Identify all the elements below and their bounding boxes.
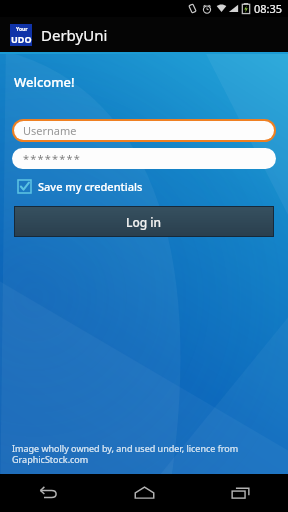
button[interactable]: Log in	[15, 207, 273, 236]
button[interactable]: Save my credentials	[16, 177, 145, 196]
button[interactable]: Back	[0, 474, 96, 512]
staticText: Save my credentials	[38, 179, 143, 194]
staticText: Username	[23, 123, 77, 138]
button[interactable]: Home	[96, 474, 192, 512]
staticText: Welcome!	[14, 73, 75, 91]
staticText: 08:35	[254, 1, 283, 16]
staticText: ********	[23, 151, 82, 166]
button[interactable]: ********	[12, 148, 276, 169]
staticText: UDO	[11, 33, 32, 45]
staticText: Image wholly owned by, and used under, l…	[12, 442, 239, 466]
staticText: Log in	[126, 214, 162, 230]
staticText: Your	[16, 26, 28, 33]
staticText: DerbyUni	[41, 25, 108, 45]
button[interactable]: Username	[14, 121, 274, 140]
button[interactable]: Recent apps	[192, 474, 288, 512]
